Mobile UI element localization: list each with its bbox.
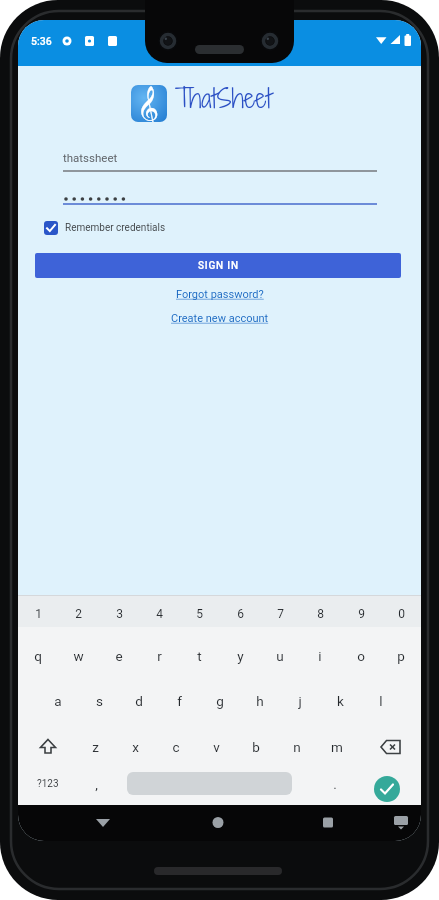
button[interactable]: 0 xyxy=(381,603,421,625)
staticText: SIGN IN xyxy=(198,260,239,272)
staticText: t xyxy=(197,648,202,664)
button[interactable]: 9 xyxy=(341,603,381,625)
button[interactable]: 2 xyxy=(58,603,98,625)
staticText: f xyxy=(177,693,182,709)
staticText: s xyxy=(96,693,103,709)
staticText: 8 xyxy=(317,607,324,621)
button[interactable]: k xyxy=(320,687,360,715)
staticText: l xyxy=(379,693,383,709)
button[interactable]: 4 xyxy=(139,603,179,625)
staticText: v xyxy=(213,739,220,755)
button[interactable]: w xyxy=(58,642,98,670)
button[interactable]: o xyxy=(341,642,381,670)
staticText: 6 xyxy=(237,607,244,621)
staticText: y xyxy=(237,648,244,664)
button[interactable]: 1 xyxy=(18,603,58,625)
staticText: c xyxy=(172,739,180,755)
staticText: 4 xyxy=(156,607,163,621)
staticText: 3 xyxy=(116,607,123,621)
button[interactable]: b xyxy=(236,733,276,761)
staticText: w xyxy=(73,648,84,664)
staticText: 2 xyxy=(75,607,82,621)
button[interactable] xyxy=(390,812,412,834)
staticText: z xyxy=(92,739,99,755)
button[interactable]: x xyxy=(115,733,155,761)
button[interactable]: Forgot password? xyxy=(176,288,264,301)
staticText: Remember credentials xyxy=(65,222,166,234)
button[interactable]: Remember credentials xyxy=(44,221,166,235)
button[interactable] xyxy=(206,810,230,834)
button[interactable]: i xyxy=(300,642,340,670)
staticText: u xyxy=(276,648,284,664)
staticText: 9 xyxy=(358,607,365,621)
staticText: b xyxy=(252,739,260,755)
button[interactable]: 5 xyxy=(179,603,219,625)
button[interactable]: e xyxy=(99,642,139,670)
button[interactable]: s xyxy=(79,687,119,715)
button[interactable]: 8 xyxy=(300,603,340,625)
button[interactable]: j xyxy=(280,687,320,715)
button[interactable]: 6 xyxy=(220,603,260,625)
button[interactable]: . xyxy=(315,772,355,796)
staticText: . xyxy=(333,776,337,792)
button[interactable]: ?123 xyxy=(28,772,68,796)
staticText: d xyxy=(135,693,143,709)
button[interactable]: 3 xyxy=(99,603,139,625)
button[interactable]: c xyxy=(156,733,196,761)
button[interactable] xyxy=(374,776,400,802)
staticText: 𝄞 xyxy=(140,85,159,122)
button[interactable]: SIGN IN xyxy=(35,253,401,278)
staticText: r xyxy=(157,648,162,664)
staticText: i xyxy=(318,648,322,664)
button[interactable]: d xyxy=(119,687,159,715)
button[interactable]: v xyxy=(196,733,236,761)
staticText: p xyxy=(397,648,405,664)
button[interactable]: n xyxy=(277,733,317,761)
staticText: 1 xyxy=(35,607,42,621)
button[interactable]: m xyxy=(317,733,357,761)
button[interactable]: Create new account xyxy=(171,312,269,325)
button[interactable]: z xyxy=(75,733,115,761)
staticText: h xyxy=(256,693,264,709)
staticText: n xyxy=(293,739,301,755)
button[interactable]: h xyxy=(240,687,280,715)
button[interactable] xyxy=(91,810,115,834)
staticText: g xyxy=(216,693,224,709)
button[interactable]: r xyxy=(139,642,179,670)
staticText: o xyxy=(357,648,365,664)
button[interactable]: p xyxy=(381,642,421,670)
staticText: a xyxy=(54,693,62,709)
button[interactable]: y xyxy=(220,642,260,670)
button[interactable]: g xyxy=(200,687,240,715)
button[interactable]: , xyxy=(76,772,116,796)
button[interactable] xyxy=(316,810,340,834)
button[interactable]: 7 xyxy=(260,603,300,625)
staticText: ThatSheet xyxy=(175,80,272,116)
button[interactable]: l xyxy=(361,687,401,715)
staticText: x xyxy=(132,739,139,755)
staticText: k xyxy=(337,693,344,709)
staticText: e xyxy=(115,648,123,664)
staticText: thatssheet xyxy=(63,151,118,164)
staticText: ?123 xyxy=(37,778,59,790)
staticText: q xyxy=(34,648,42,664)
staticText: 0 xyxy=(398,607,405,621)
button[interactable]: q xyxy=(18,642,58,670)
staticText: 5 xyxy=(196,607,203,621)
button[interactable]: a xyxy=(38,687,78,715)
button[interactable]: f xyxy=(159,687,199,715)
button[interactable]: u xyxy=(260,642,300,670)
button[interactable]: t xyxy=(179,642,219,670)
staticText: j xyxy=(298,693,302,709)
staticText: , xyxy=(95,776,98,792)
staticText: 5:36 xyxy=(31,35,52,47)
staticText: 7 xyxy=(277,607,284,621)
staticText: m xyxy=(331,739,343,755)
